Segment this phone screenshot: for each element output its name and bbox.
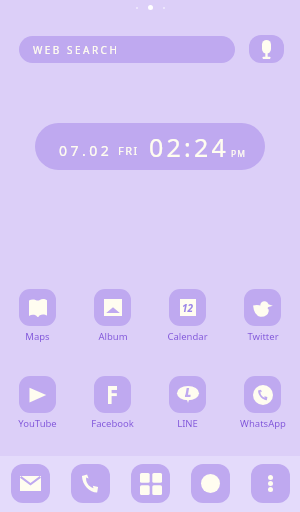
- button[interactable]: WEB SEARCH: [19, 36, 235, 63]
- staticText: WEB SEARCH: [33, 43, 120, 57]
- button[interactable]: Maps: [9, 289, 66, 343]
- staticText: Maps: [25, 330, 50, 343]
- staticText: Album: [98, 330, 128, 343]
- button[interactable]: Album: [84, 289, 141, 343]
- button[interactable]: Voice search: [249, 35, 284, 63]
- button[interactable]: LINE: [159, 376, 216, 430]
- staticText: 07.02: [59, 141, 113, 160]
- staticText: Facebook: [91, 417, 134, 430]
- button[interactable]: Mail: [11, 464, 50, 503]
- button[interactable]: WhatsApp: [234, 376, 291, 430]
- button[interactable]: Phone: [71, 464, 110, 503]
- staticText: Calendar: [167, 330, 208, 343]
- button[interactable]: 12: [159, 289, 216, 343]
- button[interactable]: More options: [251, 464, 290, 503]
- staticText: 12: [182, 301, 194, 315]
- staticText: PM: [231, 148, 246, 160]
- staticText: Twitter: [247, 330, 279, 343]
- button[interactable]: Camera: [191, 464, 230, 503]
- staticText: WhatsApp: [240, 417, 286, 430]
- staticText: YouTube: [18, 417, 57, 430]
- button[interactable]: All apps: [131, 464, 170, 503]
- staticText: 02:24: [149, 130, 229, 164]
- button[interactable]: YouTube: [9, 376, 66, 430]
- staticText: FRI: [118, 143, 139, 158]
- button[interactable]: 07.02: [35, 123, 265, 170]
- button[interactable]: Facebook: [84, 376, 141, 430]
- button[interactable]: Twitter: [234, 289, 291, 343]
- staticText: LINE: [177, 417, 198, 430]
